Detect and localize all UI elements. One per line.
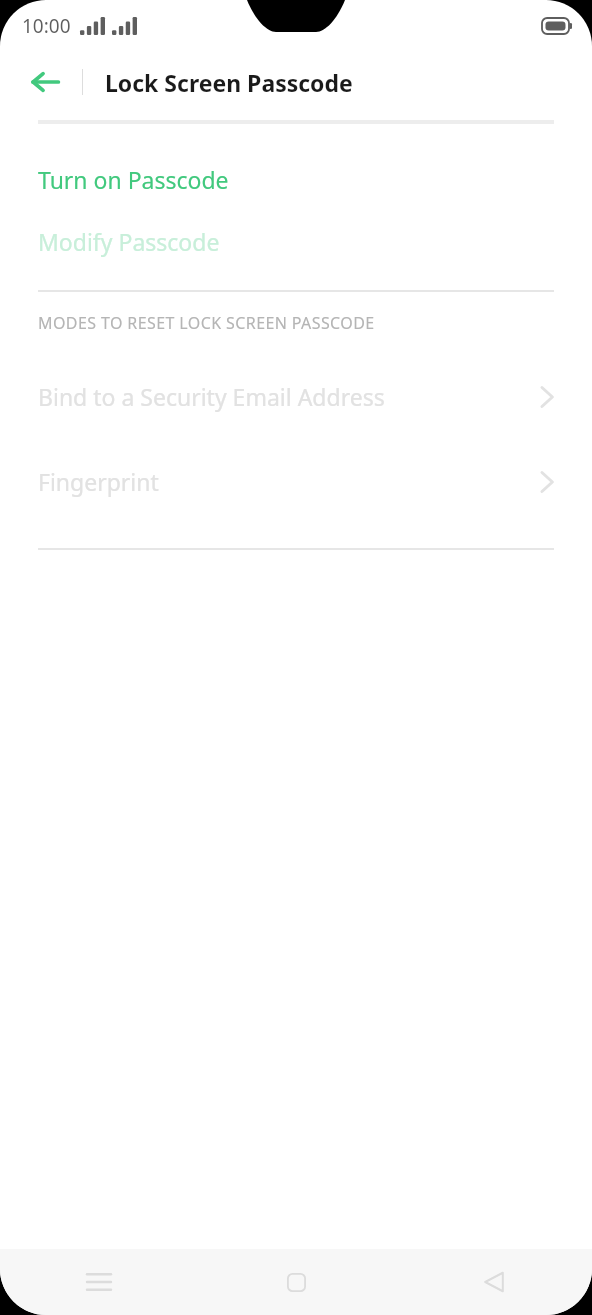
- staticText: Turn on Passcode: [38, 164, 229, 195]
- button[interactable]: Modify Passcode: [0, 210, 592, 272]
- staticText: MODES TO RESET LOCK SCREEN PASSCODE: [38, 312, 375, 334]
- button[interactable]: Turn on Passcode: [0, 148, 592, 210]
- button[interactable]: Bind to a Security Email Address: [0, 354, 592, 439]
- button[interactable]: Recent apps: [0, 1249, 198, 1315]
- staticText: Bind to a Security Email Address: [38, 381, 538, 412]
- staticText: Modify Passcode: [38, 226, 220, 257]
- button[interactable]: Back: [395, 1249, 592, 1315]
- staticText: Fingerprint: [38, 466, 538, 497]
- button[interactable]: Back: [22, 59, 68, 105]
- staticText: 10:00: [22, 13, 71, 39]
- staticText: Lock Screen Passcode: [105, 67, 353, 98]
- button[interactable]: Fingerprint: [0, 439, 592, 524]
